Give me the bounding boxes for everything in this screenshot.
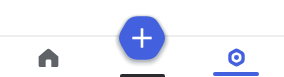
button[interactable]: Home <box>20 40 76 77</box>
button[interactable]: Add <box>106 0 178 68</box>
button[interactable]: Explore <box>208 40 264 77</box>
